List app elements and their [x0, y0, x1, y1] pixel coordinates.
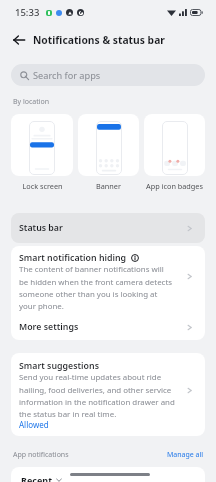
button[interactable]: Recent	[11, 467, 205, 482]
staticText: Banner	[96, 181, 121, 191]
staticText: Notifications & status bar	[33, 33, 165, 47]
staticText: App notifications	[13, 450, 69, 460]
staticText: Manage all	[167, 450, 204, 460]
button[interactable]: Manage all	[167, 450, 204, 460]
button[interactable]	[144, 114, 205, 176]
button[interactable]: Status bar	[11, 213, 205, 243]
staticText: The content of banner notifications will…	[19, 264, 175, 311]
button[interactable]: Back	[8, 29, 30, 51]
staticText: Allowed	[19, 419, 49, 430]
staticText: App icon badges	[146, 181, 203, 191]
button[interactable]	[11, 114, 73, 176]
staticText: By location	[13, 97, 50, 107]
button[interactable]: Smart notification hiding	[11, 246, 205, 314]
staticText: Search for apps	[33, 69, 101, 82]
button[interactable]: More settings	[11, 314, 205, 340]
staticText: Recent	[21, 474, 53, 482]
button[interactable]: Search for apps	[11, 64, 205, 86]
staticText: Smart suggestions	[19, 360, 99, 372]
staticText: 15:33	[15, 6, 40, 19]
staticText: Status bar	[19, 222, 63, 234]
staticText: Smart notification hiding	[19, 252, 127, 264]
button[interactable]: Smart suggestions	[11, 353, 205, 436]
staticText: Lock screen	[22, 181, 63, 191]
button[interactable]	[78, 114, 139, 176]
staticText: Send you real-time updates about ride ha…	[19, 372, 175, 419]
staticText: More settings	[19, 321, 79, 333]
